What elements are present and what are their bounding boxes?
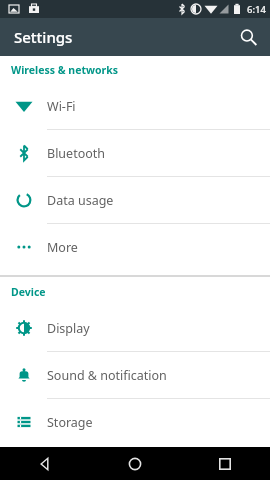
button[interactable]: Data usage: [0, 177, 270, 224]
button[interactable]: Display: [0, 305, 270, 352]
staticText: More: [47, 239, 78, 256]
staticText: Storage: [47, 414, 93, 431]
staticText: 6:14: [247, 3, 266, 16]
button[interactable]: Search: [230, 19, 266, 55]
button[interactable]: Storage: [0, 399, 270, 445]
button[interactable]: Wi-Fi: [0, 83, 270, 130]
button[interactable]: Back: [0, 447, 90, 480]
button[interactable]: Home: [90, 447, 180, 480]
staticText: Device: [11, 285, 46, 299]
button[interactable]: Sound & notification: [0, 352, 270, 399]
staticText: Display: [47, 320, 90, 337]
button[interactable]: Bluetooth: [0, 130, 270, 177]
staticText: Settings: [14, 27, 73, 47]
staticText: Bluetooth: [47, 145, 106, 162]
staticText: Data usage: [47, 192, 114, 209]
button[interactable]: More: [0, 224, 270, 270]
staticText: Wi-Fi: [47, 98, 76, 115]
staticText: Wireless & networks: [11, 63, 118, 77]
button[interactable]: Recents: [180, 447, 270, 480]
staticText: Sound & notification: [47, 367, 167, 384]
